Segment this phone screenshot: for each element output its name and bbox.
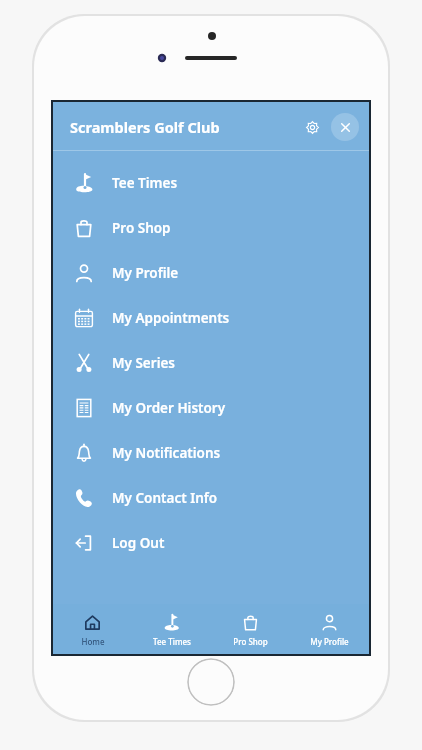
- button[interactable]: Pro Shop: [211, 604, 290, 654]
- staticText: My Profile: [310, 636, 349, 647]
- button[interactable]: My Order History: [53, 385, 369, 430]
- button[interactable]: Tee Times: [53, 160, 369, 205]
- staticText: Pro Shop: [112, 219, 171, 237]
- staticText: Home: [81, 636, 105, 647]
- button[interactable]: My Appointments: [53, 295, 369, 340]
- staticText: Log Out: [112, 534, 165, 552]
- staticText: My Contact Info: [112, 489, 218, 507]
- staticText: Tee Times: [112, 174, 178, 192]
- button[interactable]: Tee Times: [132, 604, 211, 654]
- staticText: My Order History: [112, 399, 226, 417]
- staticText: My Profile: [112, 264, 179, 282]
- button[interactable]: Log Out: [53, 520, 369, 565]
- button[interactable]: My Profile: [53, 250, 369, 295]
- staticText: My Appointments: [112, 309, 230, 327]
- staticText: My Notifications: [112, 444, 221, 462]
- staticText: Tee Times: [153, 636, 191, 647]
- button[interactable]: Home: [53, 604, 132, 654]
- button[interactable]: My Profile: [290, 604, 369, 654]
- staticText: Scramblers Golf Club: [70, 117, 220, 137]
- staticText: My Series: [112, 354, 176, 372]
- button[interactable]: My Contact Info: [53, 475, 369, 520]
- staticText: Pro Shop: [233, 636, 268, 647]
- button[interactable]: My Notifications: [53, 430, 369, 475]
- button[interactable]: Settings: [297, 112, 327, 142]
- button[interactable]: My Series: [53, 340, 369, 385]
- button[interactable]: Pro Shop: [53, 205, 369, 250]
- button[interactable]: Home button: [187, 658, 235, 706]
- button[interactable]: Close: [331, 113, 359, 141]
